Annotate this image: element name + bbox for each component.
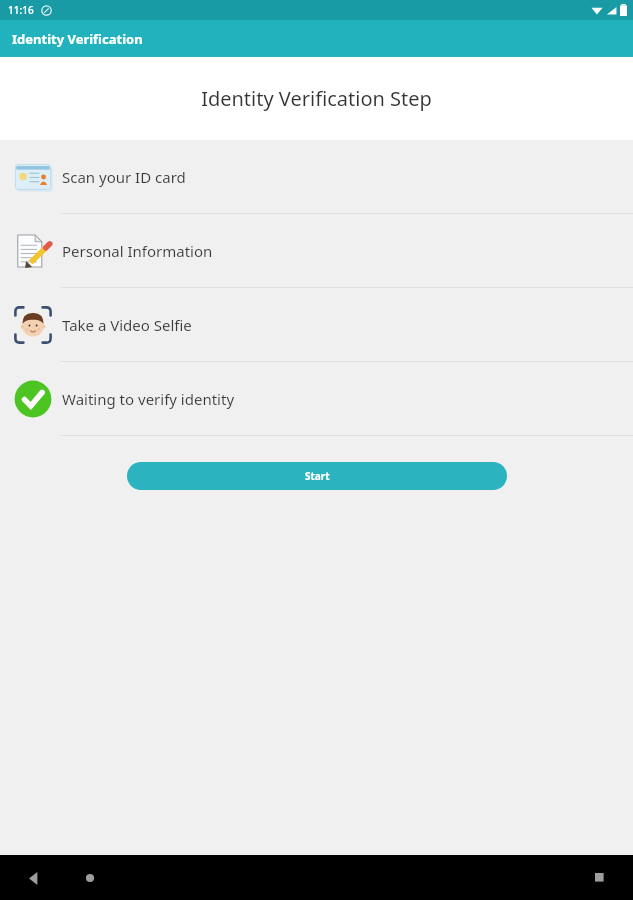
staticText: Personal Information xyxy=(62,241,213,261)
button[interactable]: Start xyxy=(127,462,507,490)
staticText: Start xyxy=(305,469,330,483)
button[interactable]: Recent apps xyxy=(586,864,614,892)
button[interactable]: Scan your ID card xyxy=(0,140,633,214)
staticText: 11:16 xyxy=(8,3,34,17)
staticText: Identity Verification Step xyxy=(201,85,432,112)
button[interactable]: Waiting to verify identity xyxy=(0,362,633,436)
button[interactable]: Take a Video Selfie xyxy=(0,288,633,362)
button[interactable]: Home xyxy=(76,864,104,892)
button[interactable]: Back xyxy=(20,864,48,892)
staticText: Scan your ID card xyxy=(62,167,186,187)
staticText: Take a Video Selfie xyxy=(62,315,192,335)
staticText: Identity Verification xyxy=(12,30,143,48)
staticText: Waiting to verify identity xyxy=(62,389,235,409)
button[interactable]: Personal Information xyxy=(0,214,633,288)
